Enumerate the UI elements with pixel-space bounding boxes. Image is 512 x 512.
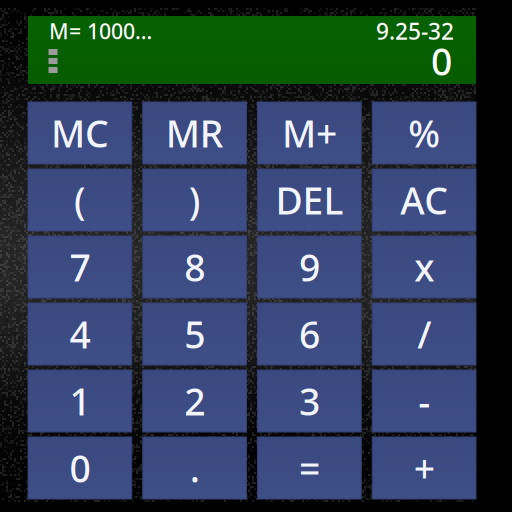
button[interactable]: / [372, 303, 476, 365]
staticText: AC [400, 175, 448, 225]
button[interactable]: 8 [143, 236, 247, 298]
staticText: 0 [431, 36, 452, 86]
button[interactable]: 5 [143, 303, 247, 365]
button[interactable]: ( [28, 169, 132, 231]
staticText: M= 1000… [49, 17, 152, 45]
button[interactable]: ) [143, 169, 247, 231]
button[interactable]: M+ [257, 102, 361, 164]
staticText: 3 [299, 376, 320, 426]
button[interactable]: 4 [28, 303, 132, 365]
button[interactable]: MR [143, 102, 247, 164]
staticText: 6 [299, 309, 320, 359]
staticText: ( [74, 175, 86, 225]
staticText: + [414, 443, 435, 493]
button[interactable]: 2 [143, 370, 247, 432]
button[interactable]: 6 [257, 303, 361, 365]
button[interactable]: % [372, 102, 476, 164]
button[interactable]: 3 [257, 370, 361, 432]
button[interactable]: More options [38, 44, 68, 78]
staticText: x [414, 242, 434, 292]
staticText: MC [51, 108, 109, 158]
button[interactable]: - [372, 370, 476, 432]
staticText: = [299, 443, 320, 493]
staticText: 8 [184, 242, 205, 292]
staticText: 9.25-32 [376, 16, 454, 46]
staticText: ) [189, 175, 201, 225]
staticText: . [190, 443, 200, 493]
staticText: - [418, 376, 430, 426]
staticText: / [417, 309, 431, 359]
button[interactable]: 9 [257, 236, 361, 298]
staticText: 4 [69, 309, 90, 359]
button[interactable]: AC [372, 169, 476, 231]
staticText: % [408, 108, 440, 158]
staticText: MR [166, 108, 224, 158]
staticText: 9 [299, 242, 320, 292]
button[interactable]: . [143, 437, 247, 499]
staticText: M+ [282, 108, 337, 158]
staticText: 5 [184, 309, 205, 359]
button[interactable]: = [257, 437, 361, 499]
button[interactable]: x [372, 236, 476, 298]
staticText: DEL [275, 175, 343, 225]
button[interactable]: 7 [28, 236, 132, 298]
staticText: 2 [184, 376, 205, 426]
button[interactable]: DEL [257, 169, 361, 231]
staticText: 7 [69, 242, 90, 292]
button[interactable]: 1 [28, 370, 132, 432]
button[interactable]: 0 [28, 437, 132, 499]
button[interactable]: MC [28, 102, 132, 164]
staticText: 0 [69, 443, 90, 493]
staticText: 1 [69, 376, 90, 426]
button[interactable]: + [372, 437, 476, 499]
